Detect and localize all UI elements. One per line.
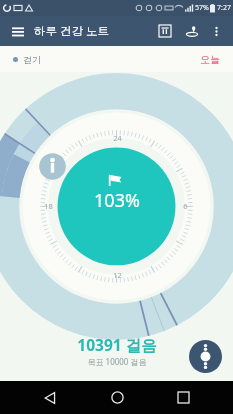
button[interactable]: Recent apps — [166, 381, 200, 414]
button[interactable]: Calendar — [154, 20, 176, 42]
button[interactable]: More actions — [189, 340, 222, 373]
staticText: 18 — [44, 201, 53, 211]
button[interactable]: Navigation menu — [7, 20, 29, 42]
staticText: 걷기 — [23, 54, 41, 65]
staticText: 10391 걸음 — [77, 334, 157, 355]
button[interactable]: Home — [100, 381, 134, 414]
staticText: 12 — [113, 270, 122, 280]
staticText: 7:27 — [217, 3, 231, 13]
staticText: 6 — [183, 201, 188, 211]
staticText: 오늘 — [200, 53, 220, 66]
button[interactable]: 오늘 — [200, 53, 220, 66]
button[interactable]: 걷기 — [0, 46, 233, 72]
button[interactable]: Back — [33, 381, 67, 414]
button[interactable]: Route location — [181, 20, 203, 42]
staticText: 57% — [195, 3, 209, 13]
button[interactable]: More options — [206, 21, 226, 41]
staticText: 목표 10000 걸음 — [87, 356, 147, 367]
staticText: 24 — [113, 133, 122, 143]
staticText: 103% — [94, 188, 140, 213]
staticText: 하루 건강 노트 — [34, 23, 109, 39]
